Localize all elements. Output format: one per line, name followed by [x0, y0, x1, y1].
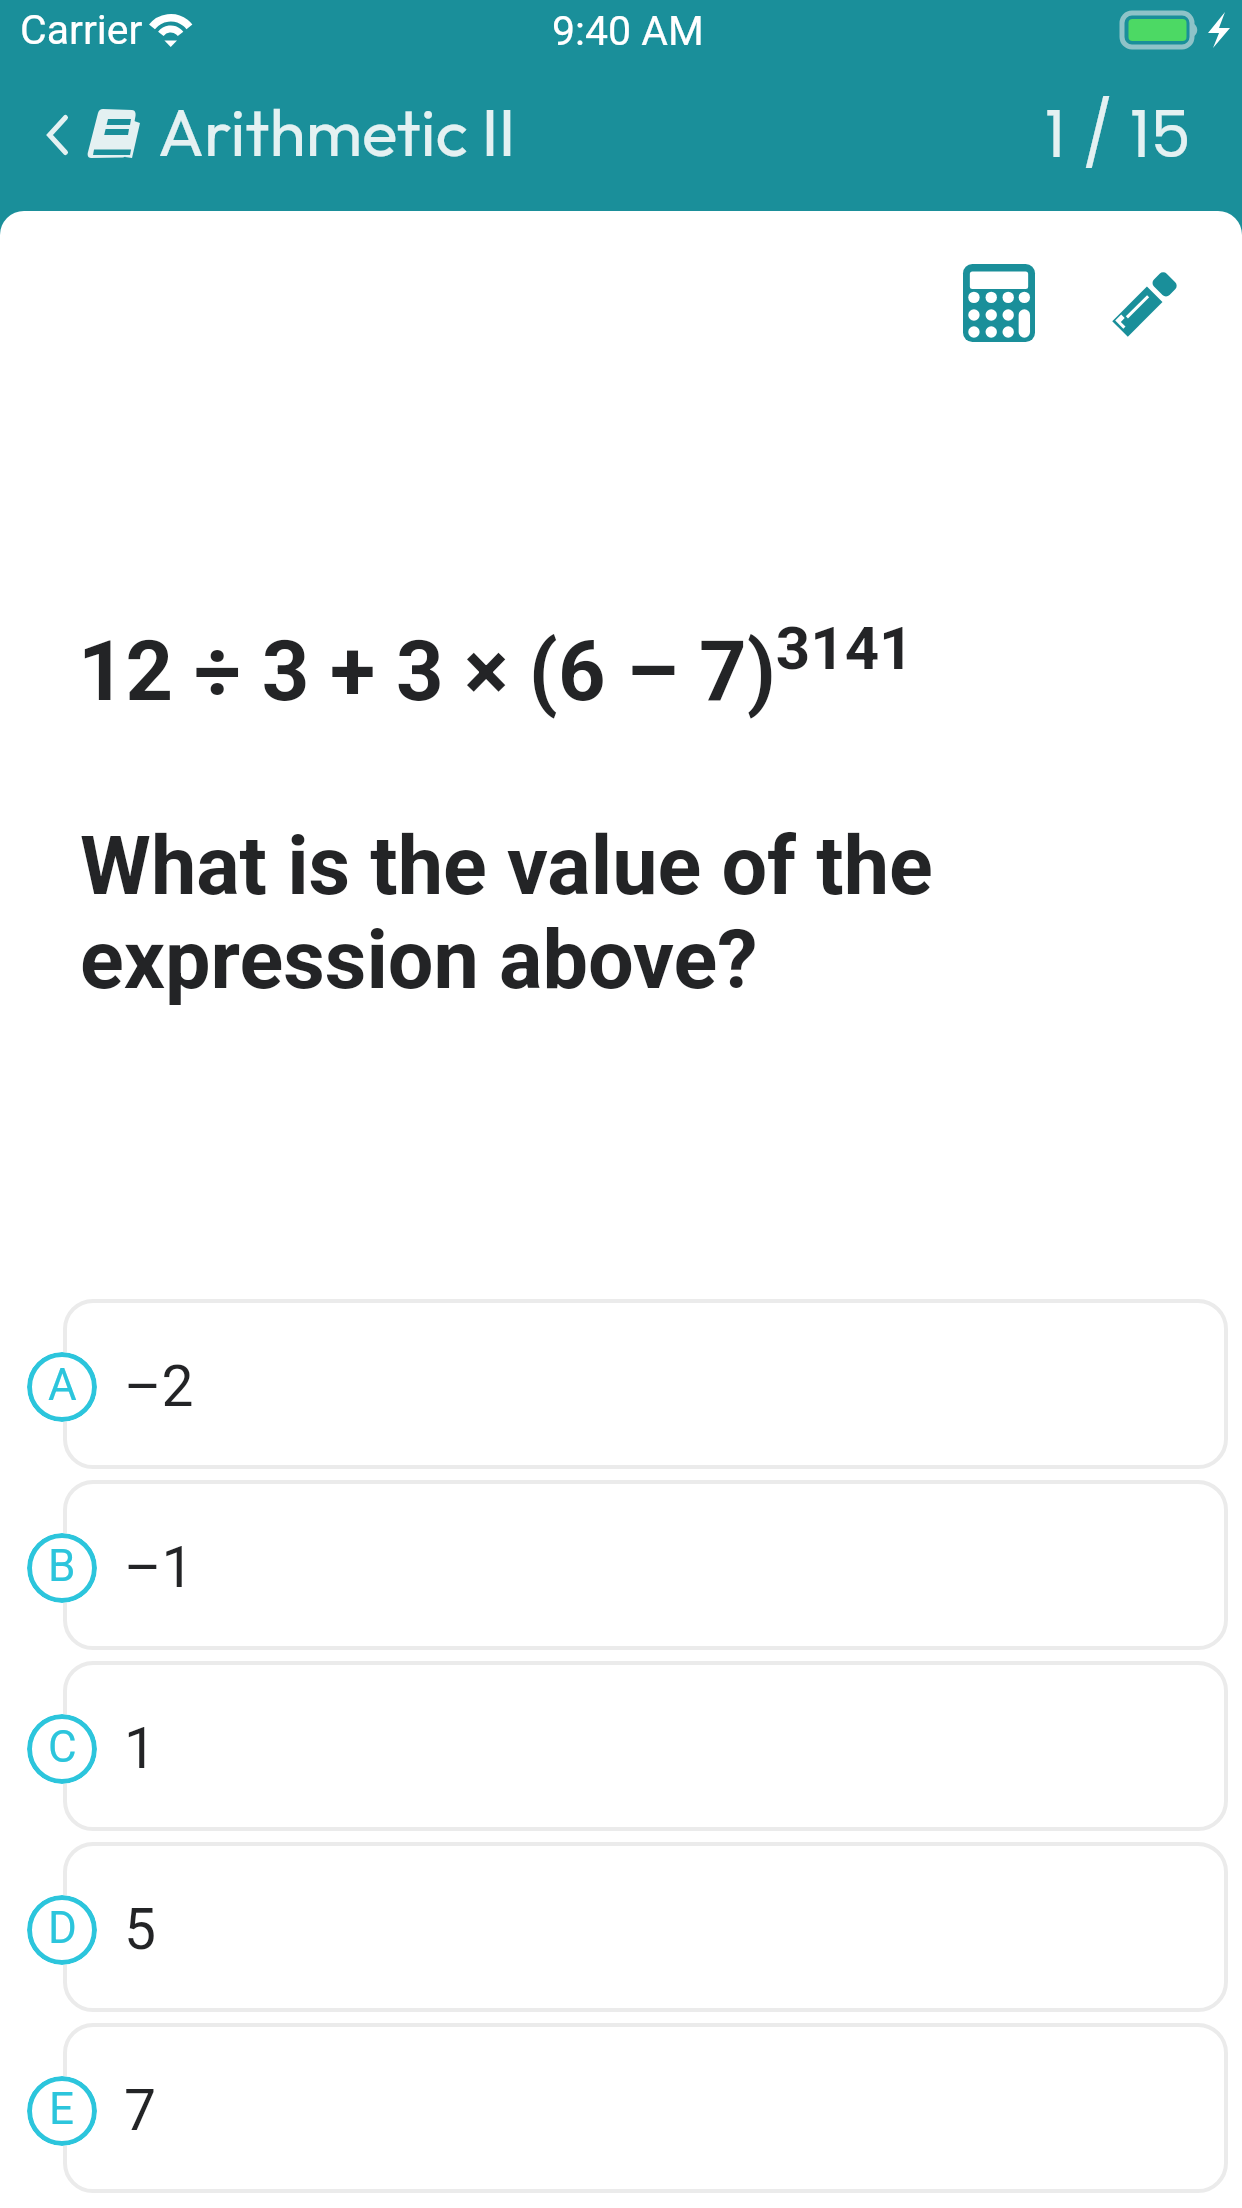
staticText: 1	[124, 1715, 157, 1782]
staticText: 7	[124, 2077, 157, 2144]
button[interactable]: Calculator	[941, 245, 1057, 361]
staticText: E	[49, 2083, 75, 2135]
staticText: B	[48, 1540, 76, 1592]
staticText: D	[48, 1902, 77, 1954]
staticText: 1 / 15	[1045, 90, 1191, 180]
button[interactable]: 5	[0, 1842, 1242, 2012]
staticText: A	[48, 1359, 77, 1411]
button[interactable]: 7	[0, 2023, 1242, 2193]
button[interactable]: –2	[0, 1299, 1242, 1469]
button[interactable]: Scratchpad	[1087, 245, 1203, 361]
staticText: 12 ÷ 3 + 3 × (6 – 7)3141	[78, 613, 914, 720]
staticText: –1	[124, 1534, 194, 1601]
button[interactable]: 1	[0, 1661, 1242, 1831]
staticText: 9:40 AM	[552, 7, 704, 55]
staticText: C	[48, 1721, 77, 1773]
staticText: Arithmetic II	[158, 90, 516, 173]
button[interactable]: –1	[0, 1480, 1242, 1650]
button[interactable]: Back to Arithmetic II	[24, 88, 534, 184]
staticText: –2	[124, 1353, 194, 1420]
staticText: 5	[124, 1896, 157, 1963]
staticText: What is the value of the expression abov…	[80, 819, 960, 1008]
staticText: Carrier	[20, 6, 143, 54]
